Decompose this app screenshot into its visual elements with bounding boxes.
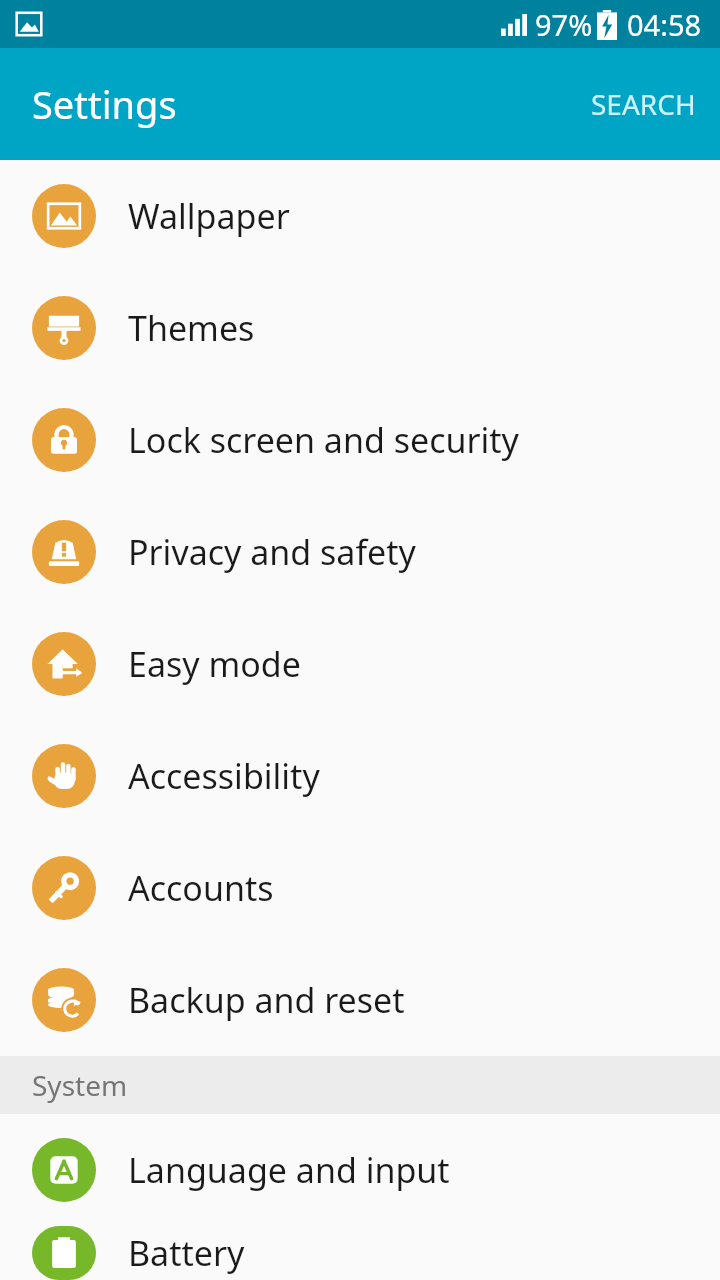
staticText: Easy mode [128, 641, 301, 687]
button[interactable]: Backup and reset [0, 944, 720, 1056]
staticText: Language and input [128, 1147, 450, 1193]
staticText: Accounts [128, 865, 274, 911]
staticText: SEARCH [591, 85, 696, 123]
staticText: Backup and reset [128, 977, 405, 1023]
staticText: Settings [32, 78, 177, 130]
staticText: Themes [128, 305, 255, 351]
staticText: 97% [535, 5, 593, 44]
button[interactable]: Themes [0, 272, 720, 384]
staticText: Lock screen and security [128, 417, 519, 463]
staticText: Wallpaper [128, 193, 290, 239]
button[interactable]: Wallpaper [0, 160, 720, 272]
staticText: Battery [128, 1230, 245, 1276]
button[interactable]: Lock screen and security [0, 384, 720, 496]
button[interactable]: Accounts [0, 832, 720, 944]
button[interactable]: SEARCH [567, 67, 720, 141]
staticText: 04:58 [627, 5, 702, 44]
button[interactable]: Language and input [0, 1114, 720, 1226]
button[interactable]: Easy mode [0, 608, 720, 720]
button[interactable]: Privacy and safety [0, 496, 720, 608]
button[interactable]: Battery [0, 1226, 720, 1280]
button[interactable]: Accessibility [0, 720, 720, 832]
staticText: Accessibility [128, 753, 320, 799]
staticText: System [32, 1066, 128, 1104]
staticText: Privacy and safety [128, 529, 416, 575]
